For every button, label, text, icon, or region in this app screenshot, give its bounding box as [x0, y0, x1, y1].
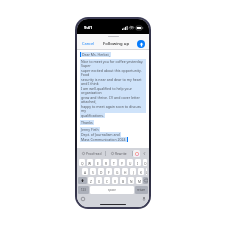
staticText: M [138, 179, 141, 183]
staticText: Thanks [81, 120, 93, 125]
button[interactable]: space [90, 186, 134, 194]
button[interactable]: L [146, 168, 147, 175]
staticText: Rewrite [115, 151, 127, 155]
staticText: I am well-qualified to help your organiz… [81, 86, 145, 95]
button[interactable]: Writing tools [133, 150, 140, 157]
staticText: C [106, 179, 109, 183]
staticText: F [108, 170, 110, 174]
staticText: O [144, 161, 147, 165]
staticText: X [98, 179, 100, 183]
button[interactable]: G [114, 168, 120, 175]
button[interactable]: J [130, 168, 136, 175]
button[interactable]: Shift [78, 177, 87, 184]
staticText: security is near and dear to my heart an… [81, 77, 145, 86]
staticText: B [122, 179, 125, 183]
button[interactable]: Rewrite [106, 151, 132, 155]
button[interactable]: A [82, 168, 88, 175]
button[interactable]: I [135, 159, 141, 166]
staticText: space [108, 188, 116, 192]
button[interactable]: More [142, 150, 147, 157]
staticText: T [113, 161, 115, 165]
staticText: L [146, 170, 147, 174]
staticText: Mass Communication 2024 [81, 137, 126, 142]
button[interactable]: Backspace [143, 177, 148, 184]
button[interactable]: V [112, 177, 118, 184]
staticText: Q [81, 161, 84, 165]
button[interactable]: Dictate [141, 196, 146, 201]
staticText: R [105, 161, 108, 165]
staticText: G [116, 170, 119, 174]
button[interactable]: O [143, 159, 147, 166]
button[interactable]: Q [79, 159, 85, 166]
staticText: A [84, 170, 87, 174]
button[interactable]: S [90, 168, 96, 175]
staticText: Dept. of Journalism and [81, 132, 120, 137]
button[interactable]: Y [119, 159, 125, 166]
staticText: N [130, 179, 133, 183]
button[interactable]: N [128, 177, 134, 184]
staticText: grow and thrive. CV and cover letter att… [81, 95, 145, 104]
staticText: V [114, 179, 116, 183]
staticText: Cancel [82, 41, 95, 46]
staticText: return [137, 188, 146, 192]
button[interactable]: F [106, 168, 112, 175]
button[interactable]: Emoji [80, 196, 85, 201]
staticText: 123 [81, 188, 86, 192]
staticText: S [92, 170, 94, 174]
staticText: U [129, 161, 132, 165]
button[interactable]: X [96, 177, 102, 184]
button[interactable]: C [104, 177, 110, 184]
button[interactable]: H [122, 168, 128, 175]
staticText: happy to meet again soon to discuss my [81, 104, 145, 113]
staticText: qualifications. [81, 113, 104, 118]
staticText: Nice to meet you for coffee yesterday. S… [81, 59, 145, 68]
staticText: 9:41 [84, 25, 93, 31]
staticText: Y [121, 161, 123, 165]
staticText: I [137, 161, 139, 165]
button[interactable]: Proofread [79, 151, 105, 155]
staticText: K [140, 170, 143, 174]
button[interactable]: U [127, 159, 133, 166]
staticText: Proofread [86, 151, 102, 155]
button[interactable]: Send [137, 40, 145, 48]
staticText: super excited about this opportunity. Fo… [81, 68, 145, 77]
staticText: Jenny Firth [81, 127, 99, 132]
button[interactable]: Cancel [81, 40, 96, 47]
staticText: W [88, 161, 92, 165]
button[interactable]: W [87, 159, 93, 166]
staticText: J [133, 170, 134, 174]
button[interactable]: E [95, 159, 101, 166]
staticText: Following up [103, 41, 130, 47]
staticText: E [97, 161, 99, 165]
button[interactable]: Z [88, 177, 94, 184]
button[interactable]: M [136, 177, 142, 184]
button[interactable]: T [111, 159, 117, 166]
button[interactable]: D [98, 168, 104, 175]
staticText: Dear Ms. Herbst, [82, 52, 110, 57]
button[interactable]: 123 [78, 186, 89, 194]
button[interactable]: R [103, 159, 109, 166]
button[interactable]: B [120, 177, 126, 184]
staticText: D [100, 170, 103, 174]
button[interactable]: Dear Ms. Herbst, [77, 50, 149, 148]
staticText: H [124, 170, 127, 174]
button[interactable]: return [135, 186, 148, 194]
staticText: Z [90, 179, 92, 183]
button[interactable]: K [138, 168, 144, 175]
